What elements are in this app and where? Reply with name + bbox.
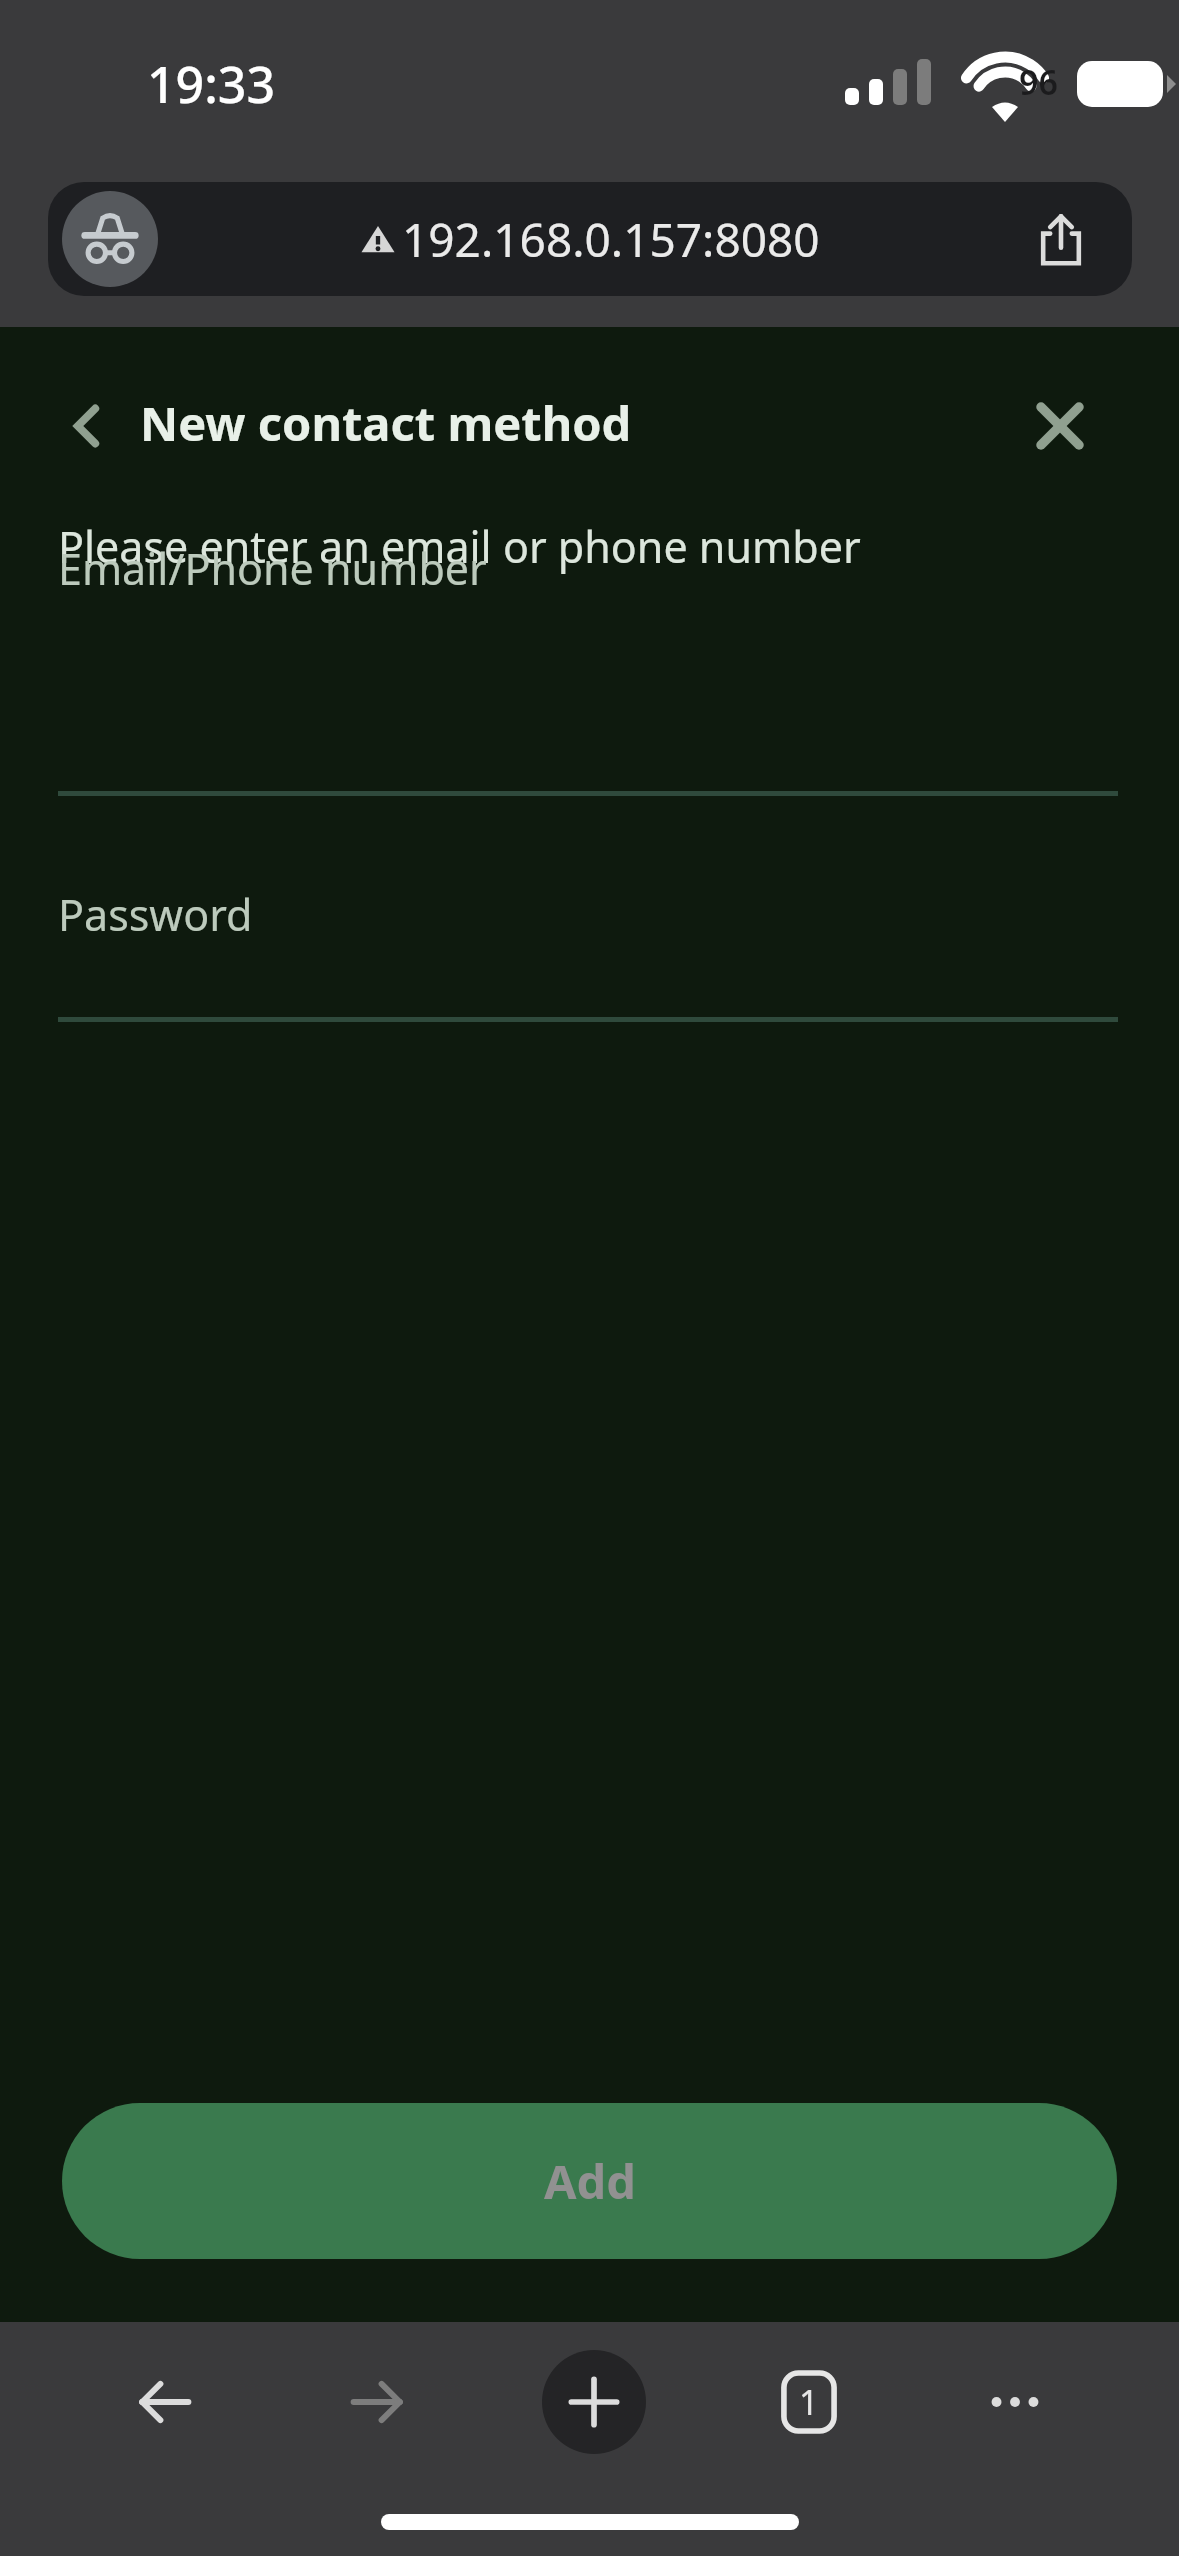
button[interactable]: Back xyxy=(50,389,124,463)
button[interactable]: Add xyxy=(62,2103,1117,2259)
button[interactable]: More options xyxy=(973,2360,1057,2444)
button[interactable]: New contact method xyxy=(140,391,632,455)
staticText: Email/Phone number xyxy=(58,539,487,598)
staticText: 192.168.0.157:8080 xyxy=(402,208,820,271)
staticText: 1 xyxy=(799,2379,819,2425)
button[interactable]: Close xyxy=(1023,389,1097,463)
button[interactable]: Incognito mode xyxy=(62,191,158,287)
button[interactable]: Incognito mode xyxy=(48,182,1132,296)
staticText: 19:33 xyxy=(147,50,275,118)
staticText: Please enter an email or phone number xyxy=(58,517,861,576)
button[interactable]: Forward xyxy=(332,2358,420,2446)
button[interactable]: Tabs xyxy=(767,2360,851,2444)
button[interactable]: Share xyxy=(1024,202,1098,276)
staticText: Password xyxy=(58,885,253,944)
button[interactable]: New tab xyxy=(542,2350,646,2454)
button[interactable]: Back xyxy=(122,2358,210,2446)
staticText: Add xyxy=(544,2149,636,2213)
staticText: 96 xyxy=(1019,59,1058,105)
button[interactable] xyxy=(58,793,1118,1015)
